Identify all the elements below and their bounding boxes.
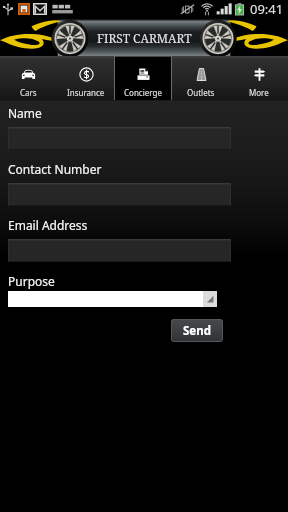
staticText: Contact Number [8,161,102,177]
staticText: More [249,87,269,98]
button[interactable]: Cars [0,56,57,100]
button[interactable]: Insurance [57,56,114,100]
staticText: Concierge [124,87,162,98]
button[interactable]: Send [171,319,223,342]
staticText: Cars [20,87,37,98]
button[interactable]: More [230,56,288,100]
staticText: Name [8,105,42,121]
button[interactable]: Outlets [172,56,230,100]
staticText: Purpose [8,273,55,289]
staticText: Insurance [67,87,105,98]
button[interactable] [8,239,231,262]
staticText: Outlets [187,87,215,98]
staticText: Send [183,323,211,339]
button[interactable] [8,127,231,150]
button[interactable] [8,183,231,206]
button[interactable]: Concierge [114,56,172,100]
staticText: Email Address [8,217,88,233]
staticText: FIRST CARMART [97,30,192,46]
button[interactable]: Purpose dropdown [8,291,217,307]
staticText: 09:41 [250,0,284,18]
